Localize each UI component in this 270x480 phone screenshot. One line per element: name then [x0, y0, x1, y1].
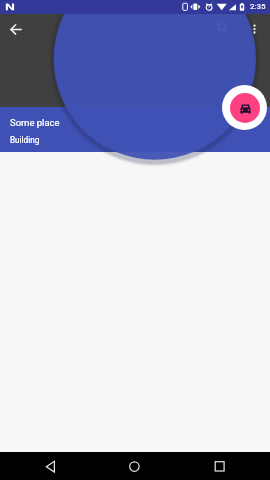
staticText: Building [10, 135, 40, 145]
staticText: 2:35 [250, 2, 266, 11]
button[interactable]: Directions [230, 93, 260, 123]
button[interactable]: Navigate up [6, 19, 26, 39]
button[interactable]: Recent apps [209, 456, 230, 477]
button[interactable]: Home [124, 456, 145, 477]
button[interactable]: Back [40, 456, 61, 477]
button[interactable]: Some place [0, 107, 270, 152]
staticText: Some place [10, 117, 60, 128]
button[interactable]: More options [245, 19, 265, 39]
